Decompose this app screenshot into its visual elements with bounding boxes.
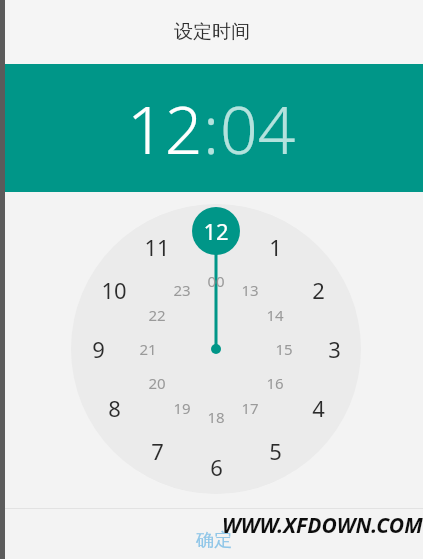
staticText: 6 [210, 452, 223, 482]
button[interactable]: 10 [94, 275, 134, 305]
button[interactable]: 1 [255, 232, 295, 262]
staticText: 20 [148, 373, 166, 393]
staticText: 13 [241, 280, 259, 300]
button[interactable]: 12 [196, 216, 236, 246]
staticText: 7 [151, 436, 164, 466]
other: Clock face [0, 192, 423, 508]
button[interactable]: 4 [298, 393, 338, 423]
staticText: 9 [92, 334, 105, 364]
button[interactable]: 8 [94, 393, 134, 423]
button[interactable]: 20 [137, 368, 177, 398]
staticText: 15 [275, 339, 293, 359]
button[interactable]: 15 [264, 334, 304, 364]
button[interactable]: 19 [162, 393, 202, 423]
staticText: 设定时间 [174, 20, 250, 44]
button[interactable]: 9 [78, 334, 118, 364]
staticText: : [203, 83, 220, 173]
button[interactable]: 3 [314, 334, 354, 364]
staticText: 18 [207, 407, 225, 427]
button[interactable]: 17 [230, 393, 270, 423]
button[interactable]: 6 [196, 452, 236, 482]
staticText: 14 [266, 305, 284, 325]
button[interactable]: 14 [255, 300, 295, 330]
button[interactable]: 13 [230, 275, 270, 305]
button[interactable]: 7 [137, 436, 177, 466]
staticText: 21 [139, 339, 157, 359]
button[interactable]: 11 [137, 232, 177, 262]
staticText: 16 [266, 373, 284, 393]
staticText: 3 [328, 334, 341, 364]
staticText: 11 [144, 232, 170, 262]
staticText: 1 [269, 232, 282, 262]
button[interactable]: 23 [162, 275, 202, 305]
button[interactable]: 04 [220, 83, 296, 173]
button[interactable]: 5 [255, 436, 295, 466]
button[interactable]: 18 [196, 402, 236, 432]
button[interactable]: 22 [137, 300, 177, 330]
staticText: 17 [241, 398, 259, 418]
staticText: 10 [101, 275, 127, 305]
button[interactable]: 确定 [188, 527, 240, 554]
staticText: 19 [173, 398, 191, 418]
button[interactable]: 21 [128, 334, 168, 364]
button[interactable]: 00 [196, 266, 236, 296]
staticText: 22 [148, 305, 166, 325]
staticText: 8 [108, 393, 121, 423]
staticText: WWW.XFDOWN.COM [222, 511, 423, 540]
staticText: 5 [269, 436, 282, 466]
staticText: 2 [312, 275, 325, 305]
staticText: 确定 [196, 529, 232, 552]
staticText: 04 [220, 83, 296, 173]
staticText: 00 [207, 271, 225, 291]
staticText: 23 [173, 280, 191, 300]
button[interactable]: 12 [127, 83, 203, 173]
button[interactable]: 2 [298, 275, 338, 305]
staticText: 12 [203, 216, 229, 246]
button[interactable]: 16 [255, 368, 295, 398]
staticText: 4 [312, 393, 325, 423]
staticText: 12 [127, 83, 203, 173]
